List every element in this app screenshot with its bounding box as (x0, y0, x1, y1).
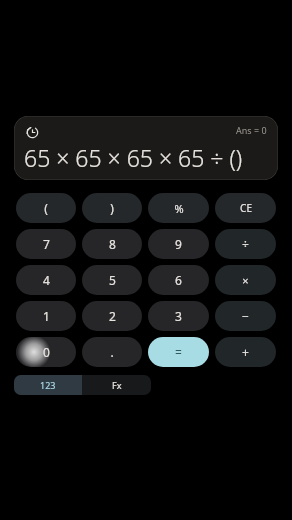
button[interactable]: 9 (148, 229, 209, 259)
button[interactable]: . (82, 337, 142, 367)
staticText: 4 (43, 272, 50, 288)
button[interactable]: 3 (148, 301, 209, 331)
staticText: Ans = 0 (236, 124, 267, 136)
button[interactable]: 1 (16, 301, 76, 331)
button[interactable]: 8 (82, 229, 142, 259)
button[interactable]: History (23, 123, 41, 141)
button[interactable]: 4 (16, 265, 76, 295)
staticText: 7 (43, 236, 50, 252)
staticText: 65 × 65 × 65 × 65 ÷ () (24, 142, 243, 173)
staticText: ( (44, 200, 48, 216)
staticText: 8 (109, 236, 116, 252)
staticText: 1 (43, 308, 50, 324)
staticText: Fx (112, 379, 122, 391)
staticText: + (242, 344, 249, 360)
button[interactable]: ÷ (215, 229, 276, 259)
staticText: . (110, 344, 114, 360)
staticText: 3 (175, 308, 182, 324)
button[interactable]: 6 (148, 265, 209, 295)
staticText: 123 (40, 379, 56, 391)
button[interactable]: − (215, 301, 276, 331)
staticText: % (174, 201, 184, 216)
staticText: 0 (43, 344, 50, 360)
button[interactable]: Fx (82, 375, 151, 395)
staticText: 6 (175, 272, 182, 288)
staticText: ) (110, 200, 114, 216)
button[interactable]: 5 (82, 265, 142, 295)
staticText: 9 (175, 236, 182, 252)
button[interactable]: = (148, 337, 209, 367)
button[interactable]: 0 (16, 337, 76, 367)
staticText: ÷ (242, 236, 249, 252)
staticText: × (242, 273, 249, 288)
button[interactable]: CE (215, 193, 276, 223)
button[interactable]: + (215, 337, 276, 367)
staticText: CE (240, 201, 252, 215)
button[interactable]: ) (82, 193, 142, 223)
button[interactable]: 7 (16, 229, 76, 259)
button[interactable]: % (148, 193, 209, 223)
staticText: − (242, 308, 249, 324)
button[interactable]: ( (16, 193, 76, 223)
button[interactable]: 2 (82, 301, 142, 331)
button[interactable]: 123 (14, 375, 82, 395)
staticText: 5 (109, 272, 116, 288)
staticText: 2 (109, 308, 116, 324)
button[interactable]: × (215, 265, 276, 295)
staticText: = (175, 344, 182, 360)
